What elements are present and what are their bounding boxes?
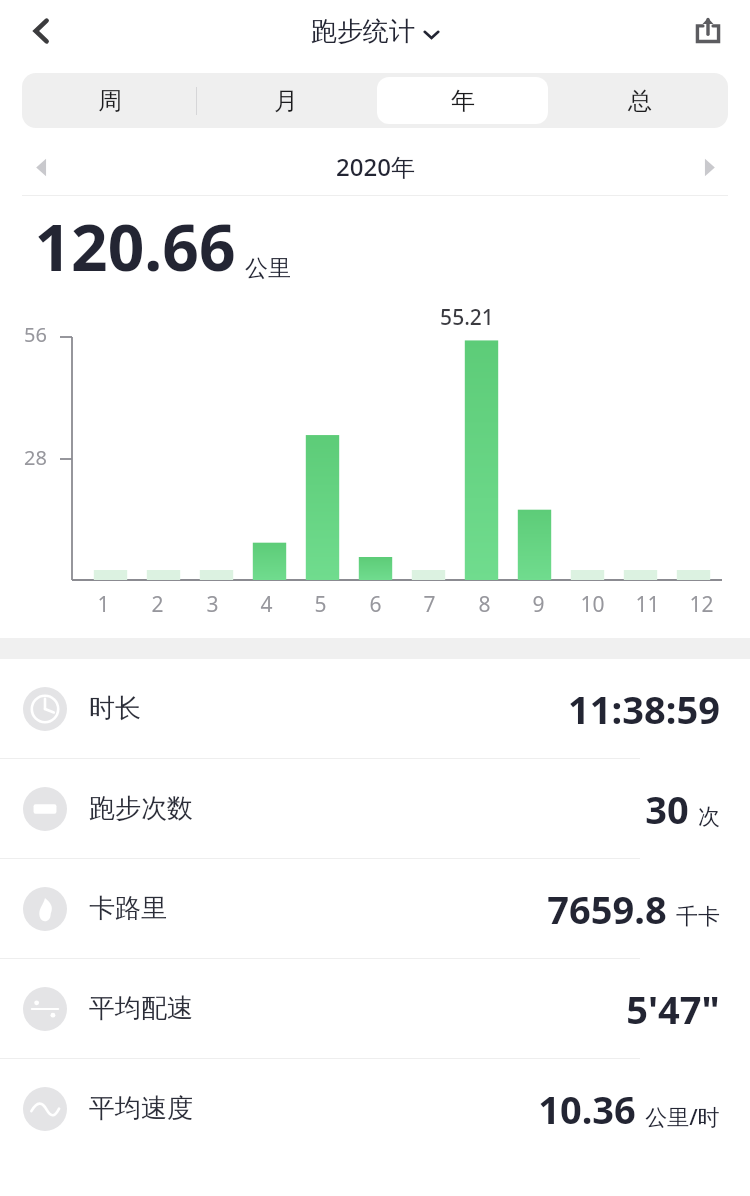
staticText: 月 bbox=[274, 86, 298, 116]
staticText: 56 bbox=[24, 321, 47, 348]
button[interactable]: 平均速度 bbox=[0, 1059, 750, 1158]
staticText: 公里 bbox=[245, 254, 291, 283]
staticText: 5'47" bbox=[626, 983, 720, 1035]
staticText: 平均速度 bbox=[89, 1092, 193, 1125]
staticText: 千卡 bbox=[676, 903, 720, 931]
button[interactable]: 平均配速 bbox=[0, 959, 750, 1058]
staticText: 跑步统计 bbox=[311, 15, 415, 48]
staticText: 12 bbox=[689, 590, 714, 619]
button[interactable]: 卡路里 bbox=[0, 859, 750, 958]
staticText: 28 bbox=[24, 444, 47, 471]
button[interactable]: 月 bbox=[201, 77, 371, 124]
staticText: 3 bbox=[206, 590, 219, 619]
staticText: 次 bbox=[698, 803, 720, 831]
staticText: 10.36 bbox=[538, 1083, 636, 1135]
staticText: 120.66 bbox=[34, 203, 236, 290]
button[interactable]: 分享 bbox=[680, 3, 736, 59]
staticText: 7659.8 bbox=[547, 883, 667, 935]
staticText: 卡路里 bbox=[89, 892, 167, 925]
staticText: 30 bbox=[645, 783, 689, 835]
staticText: 2 bbox=[151, 590, 164, 619]
staticText: 11 bbox=[635, 590, 660, 619]
button[interactable]: 年 bbox=[377, 77, 548, 124]
staticText: 跑步次数 bbox=[89, 792, 193, 825]
staticText: 9 bbox=[532, 590, 545, 619]
button[interactable]: 上一年 bbox=[18, 144, 64, 190]
staticText: 10 bbox=[580, 590, 605, 619]
staticText: 5 bbox=[314, 590, 327, 619]
staticText: 1 bbox=[97, 590, 110, 619]
staticText: 周 bbox=[98, 86, 122, 116]
staticText: 6 bbox=[369, 590, 382, 619]
staticText: 时长 bbox=[89, 692, 141, 725]
staticText: 7 bbox=[423, 590, 436, 619]
button[interactable]: 总 bbox=[554, 77, 725, 124]
button[interactable]: 时长 bbox=[0, 659, 750, 758]
button[interactable]: 返回 bbox=[12, 2, 70, 60]
button[interactable]: 跑步统计 bbox=[311, 15, 440, 48]
staticText: 11:38:59 bbox=[568, 683, 720, 735]
staticText: 年 bbox=[451, 86, 475, 116]
staticText: 55.21 bbox=[440, 303, 494, 332]
staticText: 总 bbox=[628, 86, 652, 116]
staticText: 8 bbox=[478, 590, 491, 619]
button[interactable]: 跑步次数 bbox=[0, 759, 750, 858]
button[interactable]: 周 bbox=[25, 77, 195, 124]
staticText: 平均配速 bbox=[89, 992, 193, 1025]
button[interactable]: 下一年 bbox=[686, 144, 732, 190]
staticText: 4 bbox=[260, 590, 273, 619]
staticText: 公里/时 bbox=[645, 1101, 720, 1131]
staticText: 2020年 bbox=[336, 150, 415, 183]
